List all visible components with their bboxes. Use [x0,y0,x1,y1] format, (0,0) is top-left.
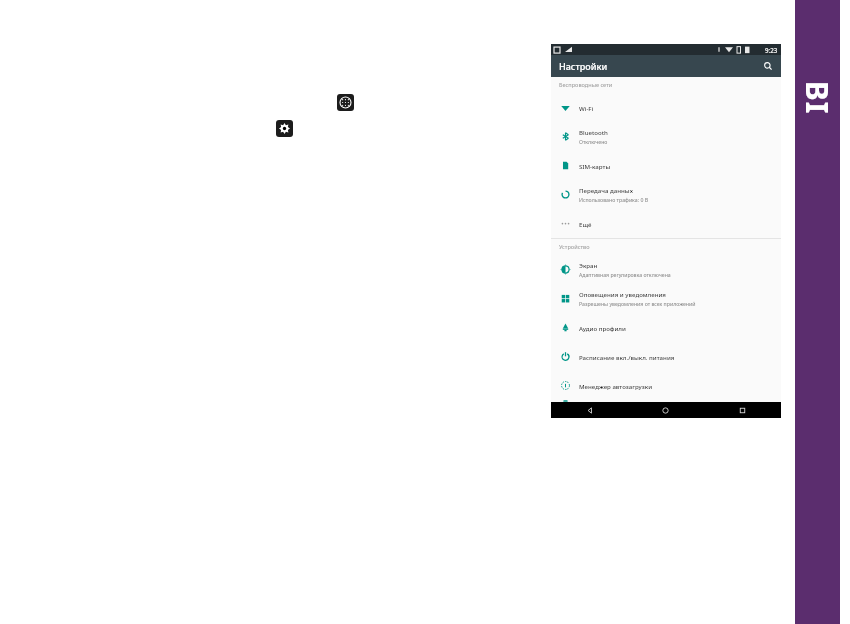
button[interactable]: Передача данных [551,180,781,209]
button[interactable]: Search [760,58,776,74]
button[interactable]: Приложения [551,400,781,402]
staticText: Оповещения и уведомления [579,290,666,298]
button[interactable]: Back [551,402,627,418]
staticText: Беспроводные сети [559,81,613,89]
button[interactable]: All apps [337,94,354,111]
staticText: Аудио профили [579,324,626,332]
staticText: Отключено [579,138,608,145]
staticText: IRBIS [756,75,850,120]
staticText: Адаптивная регулировка отключена [579,271,671,278]
staticText: SIM-карты [579,162,611,170]
staticText: Bluetooth [579,128,608,136]
button[interactable]: Ещё [551,209,781,238]
button[interactable]: Recent apps [704,402,781,418]
staticText: Менеджер автозагрузки [579,382,653,390]
staticText: Экран [579,261,598,269]
button[interactable]: Settings [276,120,293,137]
staticText: Устройство [559,243,590,251]
button[interactable]: Home [627,402,704,418]
staticText: Разрешены уведомления от всех приложений [579,300,696,307]
staticText: Настройки [559,60,608,72]
button[interactable]: Wi-Fi [551,93,781,122]
staticText: Расписание вкл./выкл. питания [579,353,675,361]
staticText: Wi-Fi [579,104,594,112]
button[interactable]: Менеджер автозагрузки [551,371,781,400]
button[interactable]: Bluetooth [551,122,781,151]
staticText: Передача данных [579,186,633,194]
button[interactable]: Оповещения и уведомления [551,284,781,313]
staticText: Ещё [579,220,592,228]
staticText: Использовано трафика: 0 B [579,196,649,203]
button[interactable]: Расписание вкл./выкл. питания [551,342,781,371]
button[interactable]: SIM-карты [551,151,781,180]
button[interactable]: Аудио профили [551,313,781,342]
button[interactable]: Экран [551,255,781,284]
staticText: 9:23 [765,46,778,54]
